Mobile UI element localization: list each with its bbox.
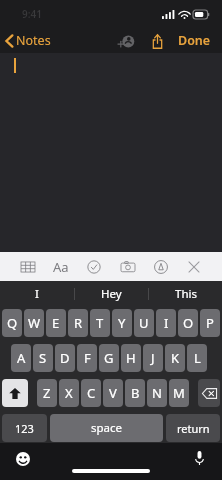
staticText: A <box>17 349 26 367</box>
button[interactable]: B <box>125 379 145 407</box>
button[interactable]: M <box>169 379 189 407</box>
staticText: T <box>96 314 104 332</box>
staticText: D <box>60 349 70 367</box>
button[interactable]: space <box>50 414 163 442</box>
button[interactable]: I <box>0 286 74 302</box>
button[interactable]: A <box>11 344 31 372</box>
button[interactable]: Z <box>37 379 57 407</box>
button[interactable]: Y <box>112 309 132 337</box>
staticText: 9:41 <box>22 7 42 21</box>
button[interactable]: return <box>166 414 220 442</box>
button[interactable]: T <box>90 309 110 337</box>
button[interactable]: R <box>68 309 88 337</box>
staticText: V <box>109 384 117 402</box>
staticText: J <box>151 349 155 367</box>
button[interactable]: Hey <box>75 286 148 302</box>
button[interactable]: O <box>178 309 198 337</box>
staticText: Done <box>178 32 211 49</box>
staticText: S <box>39 349 47 367</box>
staticText: R <box>74 314 83 332</box>
staticText: Z <box>43 384 51 402</box>
button[interactable]: Camera <box>116 255 140 279</box>
staticText: U <box>139 314 149 332</box>
staticText: K <box>171 349 180 367</box>
button[interactable]: Checklist <box>82 255 106 279</box>
staticText: P <box>206 314 214 332</box>
staticText: Notes <box>16 32 51 49</box>
button[interactable]: Table <box>16 255 40 279</box>
button[interactable]: Shift <box>2 379 28 407</box>
button[interactable]: Close <box>182 255 206 279</box>
staticText: Aa <box>53 258 69 276</box>
staticText: Hey <box>101 286 122 302</box>
button[interactable]: L <box>187 344 207 372</box>
button[interactable]: Backspace <box>198 379 220 407</box>
button[interactable]: Markup <box>149 255 173 279</box>
staticText: L <box>194 349 201 367</box>
button[interactable]: X <box>59 379 79 407</box>
button[interactable]: Notes <box>5 32 51 49</box>
button[interactable]: D <box>55 344 75 372</box>
staticText: I <box>35 286 39 302</box>
button[interactable]: Share <box>146 30 168 52</box>
button[interactable]: H <box>121 344 141 372</box>
staticText: space <box>91 420 123 436</box>
staticText: E <box>52 314 60 332</box>
staticText: I <box>164 314 169 332</box>
button[interactable]: E <box>46 309 66 337</box>
button[interactable]: V <box>103 379 123 407</box>
staticText: B <box>131 384 140 402</box>
staticText: X <box>65 384 73 402</box>
button[interactable]: N <box>147 379 167 407</box>
staticText: F <box>84 349 91 367</box>
button[interactable]: J <box>143 344 163 372</box>
staticText: O <box>183 314 194 332</box>
button[interactable]: P <box>200 309 220 337</box>
staticText: M <box>173 384 185 402</box>
button[interactable]: Q <box>2 309 22 337</box>
button[interactable]: This <box>149 286 222 302</box>
button[interactable]: U <box>134 309 154 337</box>
button[interactable]: Dictate <box>190 449 208 467</box>
button[interactable]: G <box>99 344 119 372</box>
button[interactable]: Aa <box>49 254 73 280</box>
staticText: G <box>104 349 114 367</box>
button[interactable]: Add people <box>115 30 137 52</box>
staticText: Y <box>118 314 126 332</box>
staticText: return <box>177 421 210 436</box>
button[interactable]: C <box>81 379 101 407</box>
button[interactable]: F <box>77 344 97 372</box>
staticText: Q <box>7 314 18 332</box>
staticText: 123 <box>15 421 34 436</box>
button[interactable]: K <box>165 344 185 372</box>
button[interactable]: 123 <box>2 414 47 442</box>
button[interactable]: Emoji <box>14 450 32 468</box>
staticText: This <box>175 286 197 302</box>
button[interactable]: Done <box>175 29 214 52</box>
staticText: W <box>28 314 41 332</box>
staticText: H <box>126 349 136 367</box>
button[interactable]: S <box>33 344 53 372</box>
staticText: C <box>87 384 96 402</box>
staticText: N <box>152 384 162 402</box>
button[interactable]: W <box>24 309 44 337</box>
button[interactable]: I <box>156 309 176 337</box>
